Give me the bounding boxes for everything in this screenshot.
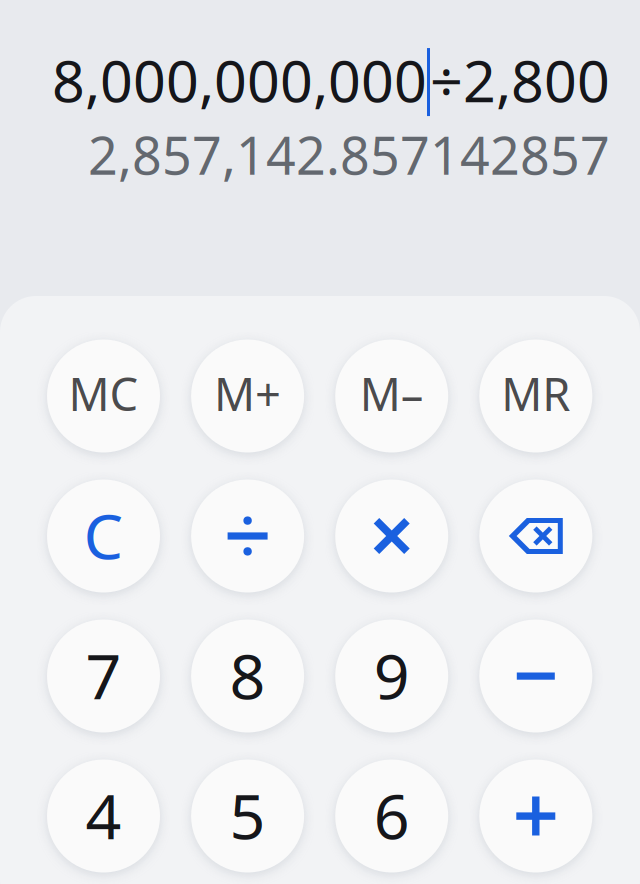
button[interactable]: 7	[47, 619, 160, 732]
staticText: ÷2,800	[430, 42, 610, 118]
staticText: 2,857,142.857142857	[88, 120, 610, 189]
button[interactable]: 5	[191, 759, 304, 872]
button[interactable]: Divide	[191, 479, 304, 592]
button[interactable]: Plus	[479, 759, 592, 872]
button[interactable]: Backspace	[479, 479, 592, 592]
button[interactable]: MR	[479, 339, 592, 452]
staticText: 8,000,000,000	[52, 42, 427, 118]
staticText: 4	[85, 773, 121, 857]
staticText: 5	[230, 773, 266, 857]
staticText: C	[83, 493, 123, 577]
button[interactable]: Multiply	[335, 479, 448, 592]
button[interactable]: Minus	[479, 619, 592, 732]
staticText: M+	[214, 363, 281, 424]
button[interactable]: 8	[191, 619, 304, 732]
button[interactable]: MC	[47, 339, 160, 452]
button[interactable]: 6	[335, 759, 448, 872]
staticText: 9	[374, 633, 410, 717]
staticText: M–	[360, 363, 424, 424]
button[interactable]: M+	[191, 339, 304, 452]
staticText: MR	[501, 363, 570, 424]
staticText: 6	[374, 773, 410, 857]
staticText: 7	[85, 633, 121, 717]
button[interactable]: C	[47, 479, 160, 592]
button[interactable]: 9	[335, 619, 448, 732]
button[interactable]: M–	[335, 339, 448, 452]
staticText: MC	[68, 363, 138, 424]
staticText: 8	[230, 633, 266, 717]
button[interactable]: 4	[47, 759, 160, 872]
